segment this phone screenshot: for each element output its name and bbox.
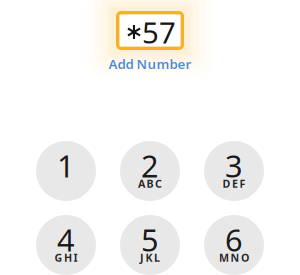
staticText: JKL [140, 250, 160, 265]
button[interactable]: 6 [204, 215, 264, 275]
staticText: 1 [57, 145, 75, 186]
button[interactable]: Phone number *57 [116, 11, 184, 50]
staticText: ABC [138, 176, 162, 191]
staticText: 2 [141, 145, 159, 186]
staticText: DEF [222, 176, 246, 191]
staticText: 3 [225, 145, 243, 186]
button[interactable]: 4 [36, 215, 96, 275]
button[interactable]: 1 [36, 141, 96, 201]
staticText: 6 [225, 219, 243, 260]
staticText: Add Number [108, 55, 191, 73]
staticText: 5 [141, 219, 159, 260]
button[interactable]: 5 [120, 215, 180, 275]
staticText [64, 176, 67, 191]
button[interactable]: 2 [120, 141, 180, 201]
button[interactable]: Add Number [108, 50, 191, 73]
staticText: 57 [142, 12, 176, 51]
staticText: MNO [219, 250, 249, 265]
staticText: GHI [54, 250, 78, 265]
staticText: 4 [57, 219, 75, 260]
button[interactable]: 3 [204, 141, 264, 201]
